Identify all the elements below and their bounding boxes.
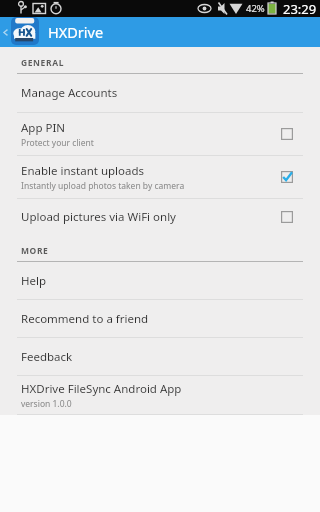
button[interactable]: HXDrive FileSync Android App	[0, 376, 320, 414]
staticText: Protect your client	[21, 137, 94, 149]
staticText: Recommend to a friend	[21, 311, 149, 327]
staticText: App PIN	[21, 120, 66, 136]
other: Toggle Enable instant uploads	[281, 171, 293, 183]
button[interactable]: App PIN	[0, 113, 320, 155]
staticText: HXDrive	[48, 22, 104, 42]
button[interactable]: Upload pictures via WiFi only	[0, 199, 320, 235]
staticText: Enable instant uploads	[21, 163, 145, 179]
staticText: MORE	[21, 245, 49, 257]
button[interactable]: Help	[0, 262, 320, 299]
staticText: 23:29	[283, 0, 317, 17]
staticText: 42%	[246, 2, 265, 15]
staticText: Help	[21, 273, 47, 289]
button[interactable]: Feedback	[0, 338, 320, 375]
staticText: version 1.0.0	[21, 398, 72, 410]
other: Toggle Upload pictures via WiFi only	[281, 211, 293, 223]
button[interactable]: Enable instant uploads	[0, 156, 320, 198]
button[interactable]: Navigate up	[0, 17, 11, 47]
staticText: Manage Accounts	[21, 85, 118, 101]
button[interactable]: Recommend to a friend	[0, 300, 320, 337]
staticText: Feedback	[21, 349, 73, 365]
other: Toggle App PIN	[281, 128, 293, 140]
staticText: GENERAL	[21, 57, 64, 69]
staticText: Instantly upload photos taken by camera	[21, 180, 185, 192]
button[interactable]: Manage Accounts	[0, 74, 320, 112]
staticText: HXDrive FileSync Android App	[21, 381, 182, 397]
staticText: Upload pictures via WiFi only	[21, 209, 176, 225]
